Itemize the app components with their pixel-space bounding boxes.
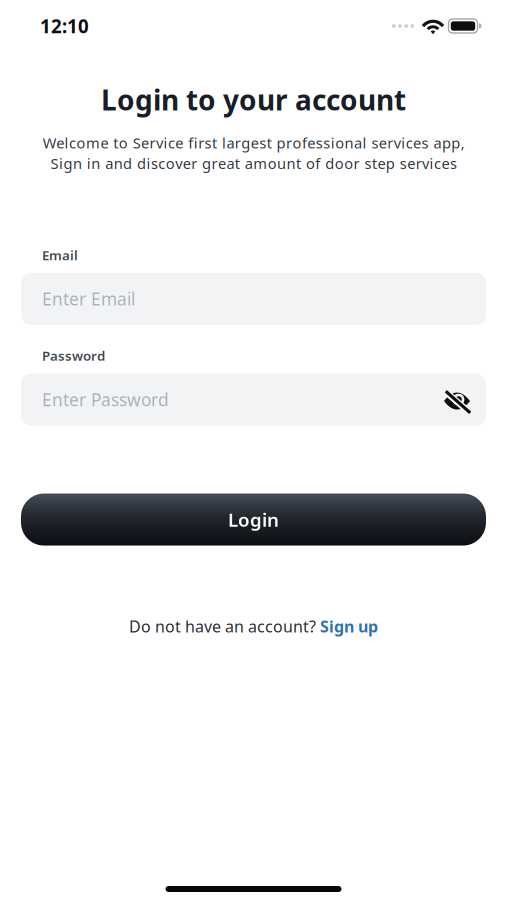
staticText: Email [42, 246, 78, 264]
staticText: Password [42, 347, 105, 364]
button[interactable]: Sign up [320, 615, 378, 637]
staticText: Welcome to Service first largest profess… [42, 133, 464, 173]
button[interactable]: Enter Password [21, 373, 486, 425]
button[interactable]: Show password [443, 389, 471, 409]
staticText: Enter Password [42, 388, 169, 411]
staticText: Enter Email [42, 287, 135, 310]
button[interactable]: Enter Email [21, 273, 486, 325]
staticText: Login to your account [101, 81, 406, 118]
staticText: Login [228, 507, 279, 532]
staticText: Do not have an account? [129, 615, 316, 637]
staticText: Sign up [320, 615, 378, 637]
button[interactable]: Login [21, 493, 486, 545]
staticText: 12:10 [40, 14, 89, 38]
